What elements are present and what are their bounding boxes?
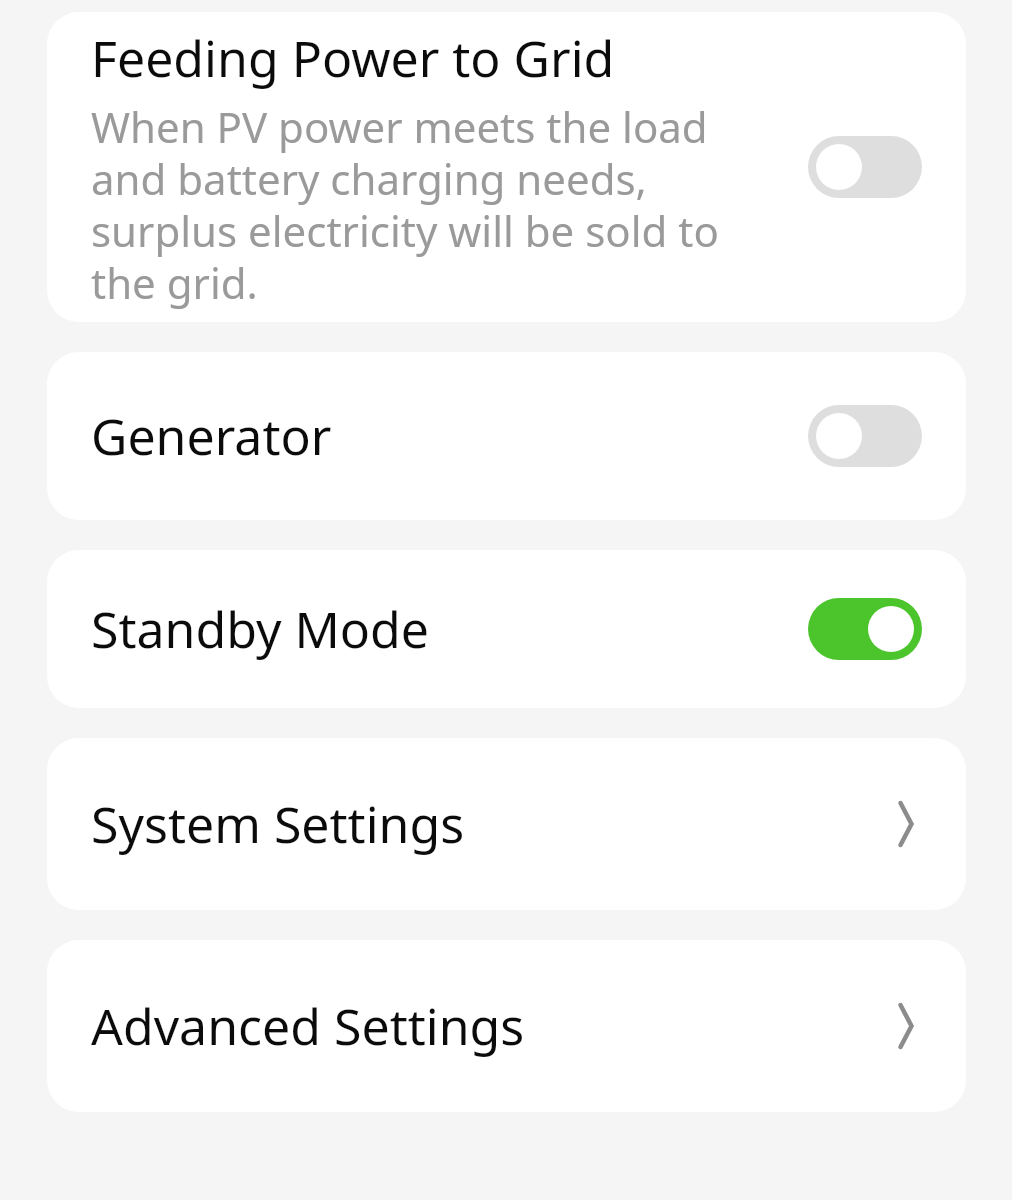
button[interactable]: Feeding Power to Grid <box>47 12 966 322</box>
button[interactable]: Advanced Settings <box>47 940 966 1112</box>
staticText: Generator <box>91 402 792 470</box>
staticText: System Settings <box>91 790 876 858</box>
staticText: When PV power meets the load and battery… <box>91 98 792 311</box>
button[interactable]: System Settings <box>47 738 966 910</box>
button[interactable]: Standby Mode <box>47 550 966 708</box>
other: Open System Settings <box>892 804 920 844</box>
staticText: Advanced Settings <box>91 992 876 1060</box>
button[interactable]: Generator <box>47 352 966 520</box>
staticText: Feeding Power to Grid <box>91 24 615 92</box>
staticText: Standby Mode <box>91 595 792 663</box>
other: Open Advanced Settings <box>892 1006 920 1046</box>
